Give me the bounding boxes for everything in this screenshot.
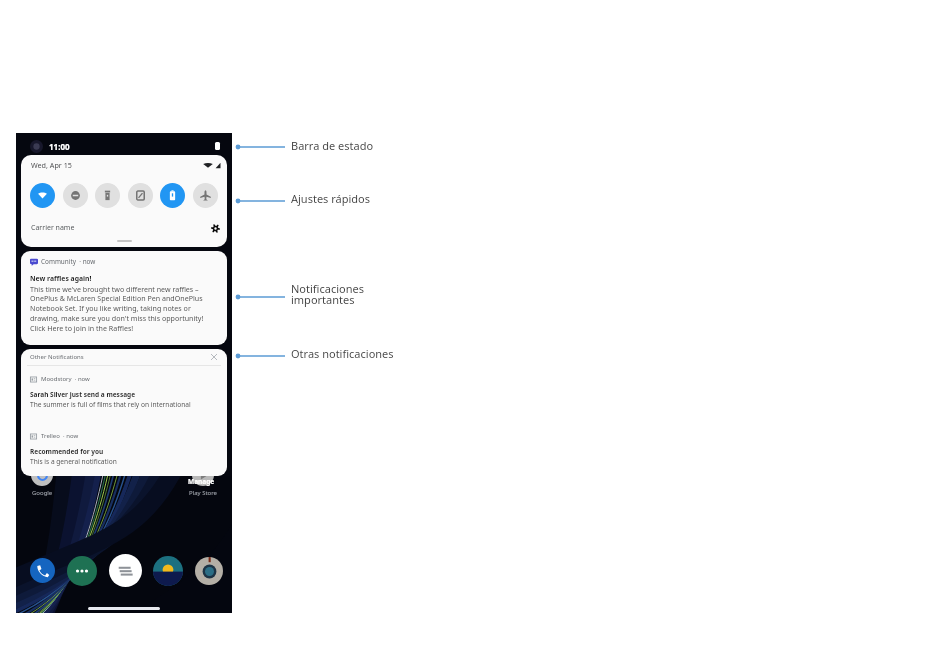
staticText: Play Store [189, 489, 217, 497]
staticText: Other Notifications [30, 353, 84, 361]
staticText: Google [32, 489, 53, 497]
staticText: Community · now [41, 257, 96, 266]
staticText: Barra de estado [291, 138, 374, 153]
button[interactable]: Phone [30, 558, 55, 583]
button[interactable]: Moodstory · now [21, 366, 227, 423]
button[interactable]: Settings [209, 222, 222, 235]
button[interactable]: Flashlight [95, 183, 120, 208]
button[interactable]: Wi-Fi [30, 183, 55, 208]
button[interactable]: Community · now [21, 251, 227, 345]
button[interactable]: Manage [188, 477, 215, 486]
staticText: This time we've brought two different ne… [30, 284, 204, 334]
staticText: Notificaciones importantes [291, 281, 364, 307]
staticText: New raffles again! [30, 274, 92, 283]
staticText: This is a general notification [30, 457, 117, 466]
button[interactable]: Photos [153, 556, 183, 586]
button[interactable]: Files [109, 554, 142, 587]
button[interactable]: Do not disturb [63, 183, 88, 208]
staticText: Carrier name [31, 223, 75, 233]
staticText: The summer is full of films that rely on… [30, 400, 191, 409]
staticText: Manage [188, 477, 215, 486]
button[interactable]: Camera [195, 557, 223, 585]
button[interactable]: Airplane mode [193, 183, 218, 208]
staticText: Ajustes rápidos [291, 191, 371, 206]
staticText: Sarah Silver just send a message [30, 390, 136, 399]
button[interactable]: Google [31, 464, 53, 486]
staticText: 11:00 [49, 141, 70, 152]
button[interactable]: Messages [67, 556, 97, 586]
staticText: Recommended for you [30, 447, 104, 456]
staticText: Wed, Apr 15 [31, 160, 72, 170]
button[interactable]: Dismiss [209, 352, 219, 362]
button[interactable]: Auto rotate [128, 183, 153, 208]
button[interactable]: Play Store [192, 464, 214, 486]
button[interactable]: Trelleo · now [21, 423, 227, 475]
button[interactable]: Battery saver [160, 183, 185, 208]
staticText: Trelleo · now [41, 432, 79, 440]
staticText: Moodstory · now [41, 375, 90, 383]
staticText: Otras notificaciones [291, 346, 394, 361]
